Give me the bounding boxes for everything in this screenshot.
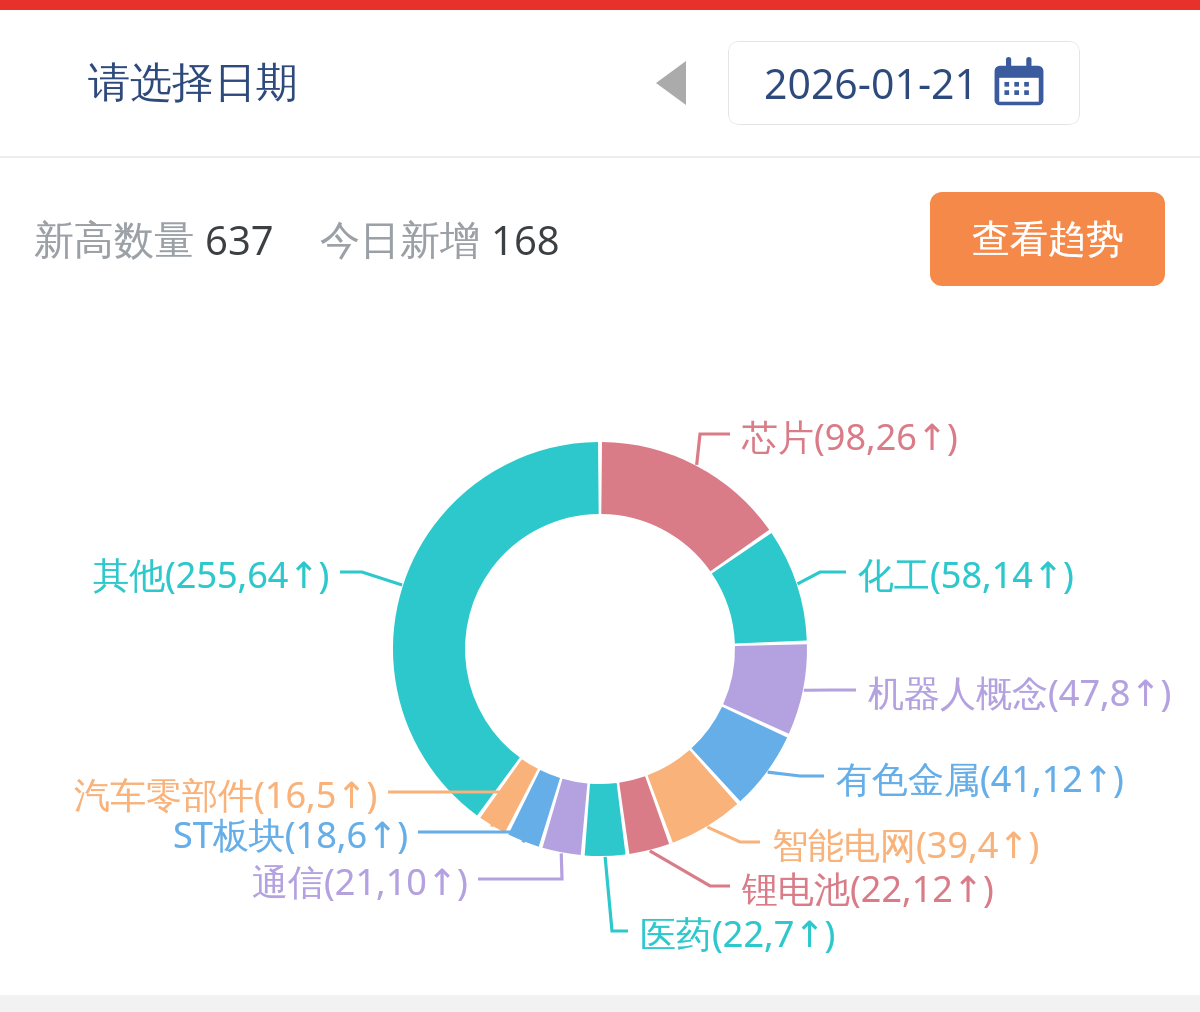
button[interactable]: 通信(21,10↑) xyxy=(0,857,468,906)
staticText: 芯片(98,26↑) xyxy=(742,412,958,461)
button[interactable]: 芯片(98,26↑) xyxy=(742,412,958,461)
button[interactable]: 2026-01-21 xyxy=(728,41,1080,125)
staticText: 2026-01-21 xyxy=(764,55,979,111)
staticText: 查看趋势 xyxy=(972,215,1124,263)
staticText: 汽车零部件(16,5↑) xyxy=(74,770,378,819)
button[interactable]: 医药(22,7↑) xyxy=(640,909,836,958)
button[interactable]: 其他(255,64↑) xyxy=(0,550,330,599)
button[interactable]: 上一天 xyxy=(640,52,702,114)
staticText: 今日新增 xyxy=(320,211,491,266)
button[interactable]: 化工(58,14↑) xyxy=(858,550,1074,599)
button[interactable]: 有色金属(41,12↑) xyxy=(836,754,1124,803)
staticText: ST板块(18,6↑) xyxy=(173,810,408,859)
button[interactable]: 汽车零部件(16,5↑) xyxy=(0,770,378,819)
staticText: 锂电池(22,12↑) xyxy=(742,864,994,913)
staticText: 机器人概念(47,8↑) xyxy=(868,668,1172,717)
staticText: 通信(21,10↑) xyxy=(252,857,468,906)
staticText: 168 xyxy=(491,212,560,266)
button[interactable]: ST板块(18,6↑) xyxy=(0,810,408,859)
button[interactable]: 锂电池(22,12↑) xyxy=(742,864,994,913)
staticText: 其他(255,64↑) xyxy=(93,550,330,599)
button[interactable]: 查看趋势 xyxy=(930,192,1165,286)
button[interactable]: 机器人概念(47,8↑) xyxy=(868,668,1172,717)
staticText: 请选择日期 xyxy=(88,57,298,110)
staticText: 医药(22,7↑) xyxy=(640,909,836,958)
staticText: 637 xyxy=(205,212,274,266)
staticText: 化工(58,14↑) xyxy=(858,550,1074,599)
staticText: 新高数量 xyxy=(34,211,205,266)
staticText: 有色金属(41,12↑) xyxy=(836,754,1124,803)
staticText: 智能电网(39,4↑) xyxy=(772,820,1040,869)
button[interactable]: 智能电网(39,4↑) xyxy=(772,820,1040,869)
